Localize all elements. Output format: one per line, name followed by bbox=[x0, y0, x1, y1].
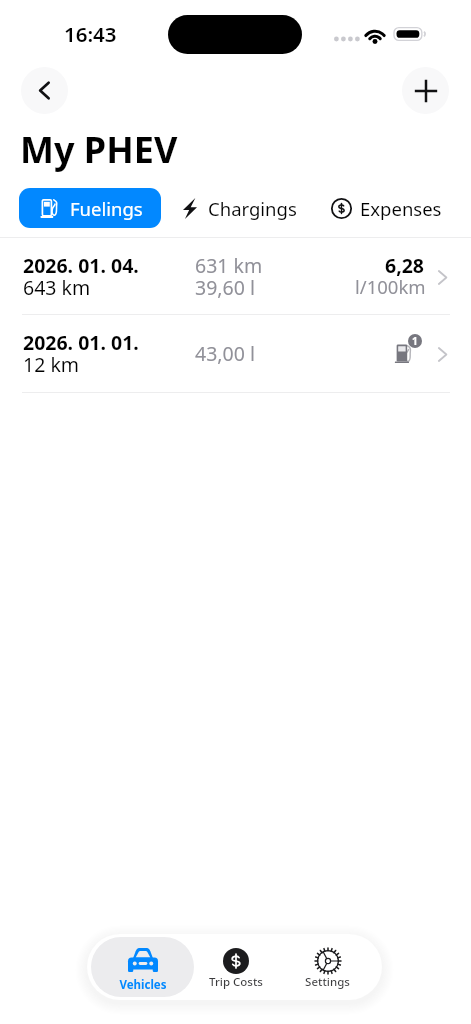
staticText: 631 km bbox=[195, 252, 263, 279]
staticText: Expenses bbox=[360, 196, 442, 221]
button[interactable]: Trip Costs bbox=[184, 937, 287, 997]
button[interactable]: Fuelings bbox=[19, 188, 161, 228]
staticText: Chargings bbox=[208, 196, 297, 221]
button[interactable]: Back bbox=[21, 67, 68, 114]
button[interactable]: Settings bbox=[276, 937, 379, 997]
staticText: 643 km bbox=[23, 274, 91, 301]
staticText: Fuelings bbox=[70, 196, 143, 221]
button[interactable]: Add bbox=[402, 67, 449, 114]
button[interactable]: Chargings bbox=[181, 188, 299, 228]
staticText: 2026. 01. 04. bbox=[23, 252, 139, 279]
staticText: Vehicles bbox=[119, 977, 167, 993]
button[interactable]: Expenses bbox=[329, 188, 444, 228]
staticText: 43,00 l bbox=[195, 340, 255, 367]
button[interactable]: 2026. 01. 04. bbox=[0, 238, 471, 314]
button[interactable]: Vehicles bbox=[91, 937, 194, 997]
staticText: 2026. 01. 01. bbox=[23, 329, 139, 356]
staticText: 16:43 bbox=[64, 20, 117, 48]
button[interactable]: 2026. 01. 01. bbox=[0, 315, 471, 392]
staticText: l/100km bbox=[355, 274, 426, 299]
staticText: Trip Costs bbox=[209, 974, 263, 990]
staticText: 1 bbox=[412, 334, 418, 348]
staticText: 12 km bbox=[23, 351, 80, 378]
staticText: 6,28 bbox=[385, 252, 425, 279]
staticText: My PHEV bbox=[20, 125, 178, 174]
staticText: Settings bbox=[305, 974, 350, 990]
staticText: 39,60 l bbox=[195, 274, 255, 301]
